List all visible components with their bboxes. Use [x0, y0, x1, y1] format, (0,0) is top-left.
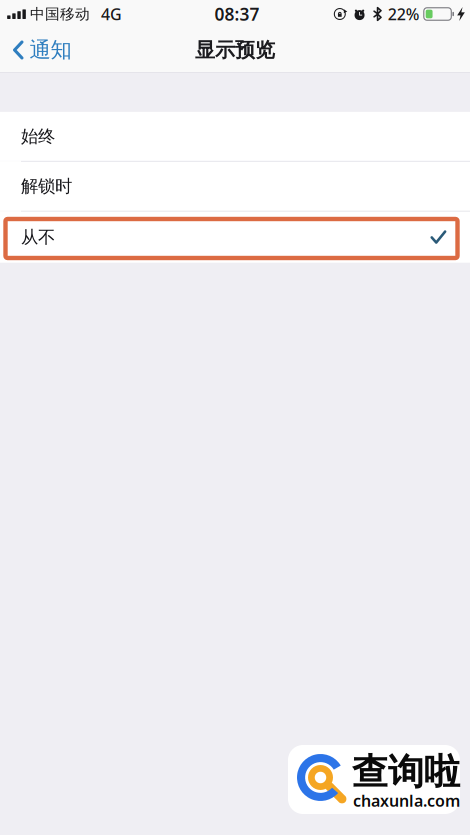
staticText: 查询啦 [352, 750, 460, 794]
staticText: 显示预览 [195, 38, 275, 62]
staticText: 从不 [21, 227, 55, 248]
staticText: 08:37 [214, 2, 259, 25]
staticText: 通知 [29, 37, 71, 63]
staticText: 中国移动 [30, 5, 90, 23]
staticText: 22% [388, 3, 420, 25]
button[interactable]: 通知 [0, 29, 81, 71]
button[interactable]: 从不 [0, 212, 470, 263]
button[interactable]: 解锁时 [0, 162, 470, 211]
staticText: chaxunla.com [353, 790, 460, 811]
staticText: 4G [101, 3, 122, 25]
staticText: 解锁时 [21, 176, 72, 197]
button[interactable]: 始终 [0, 112, 470, 161]
staticText: 始终 [21, 126, 55, 147]
